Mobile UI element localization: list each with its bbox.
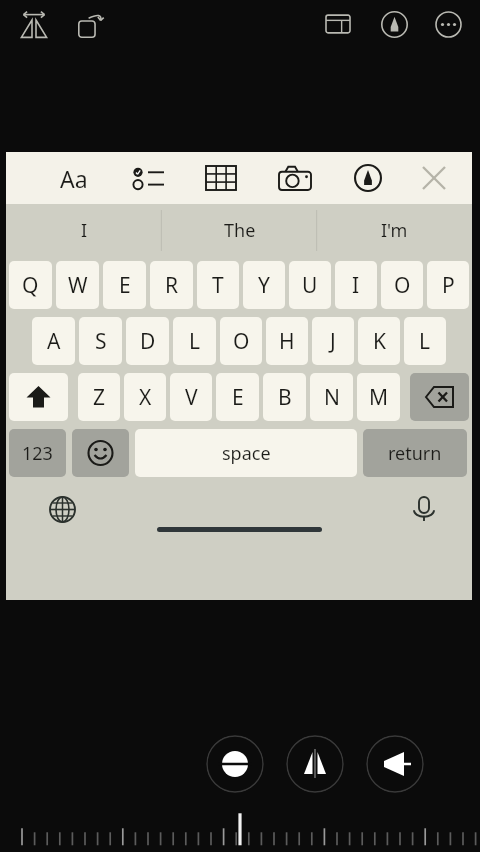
button[interactable]: Z: [78, 373, 120, 421]
staticText: X: [139, 383, 152, 412]
button[interactable]: Layout: [318, 4, 358, 44]
staticText: B: [278, 383, 292, 412]
staticText: P: [442, 271, 455, 300]
staticText: U: [302, 271, 318, 300]
button[interactable]: A: [32, 317, 75, 365]
staticText: L: [189, 327, 201, 356]
button[interactable]: M: [357, 373, 400, 421]
staticText: L: [419, 327, 431, 356]
button[interactable]: Rotate: [68, 4, 112, 48]
button[interactable]: W: [56, 261, 99, 309]
staticText: S: [95, 327, 107, 356]
button[interactable]: N: [310, 373, 353, 421]
button[interactable]: The: [162, 204, 317, 257]
button[interactable]: Table: [199, 160, 243, 196]
staticText: I: [352, 271, 360, 300]
button[interactable]: Q: [9, 261, 52, 309]
button[interactable]: V: [170, 373, 212, 421]
staticText: J: [330, 327, 336, 356]
button[interactable]: I: [6, 204, 162, 257]
staticText: A: [47, 327, 61, 356]
staticText: Y: [258, 271, 270, 300]
staticText: Z: [93, 383, 106, 412]
staticText: space: [222, 441, 271, 466]
button[interactable]: Camera: [271, 160, 319, 196]
staticText: 123: [22, 441, 53, 466]
button[interactable]: T: [197, 261, 239, 309]
button[interactable]: D: [126, 317, 169, 365]
button[interactable]: P: [427, 261, 469, 309]
staticText: D: [140, 327, 156, 356]
staticText: W: [68, 271, 88, 300]
button[interactable]: Close: [412, 160, 456, 196]
button[interactable]: E: [216, 373, 259, 421]
staticText: N: [324, 383, 340, 412]
button[interactable]: Shift: [9, 373, 68, 421]
staticText: I: [81, 218, 88, 243]
button[interactable]: K: [358, 317, 400, 365]
button[interactable]: O: [220, 317, 262, 365]
button[interactable]: return: [363, 429, 467, 477]
button[interactable]: Markup: [346, 160, 390, 196]
staticText: Q: [22, 271, 39, 300]
button[interactable]: Flip horizontal: [12, 4, 56, 48]
button[interactable]: U: [289, 261, 331, 309]
button[interactable]: Flip vertical: [206, 735, 264, 793]
staticText: E: [232, 383, 244, 412]
button[interactable]: More options: [428, 4, 468, 44]
button[interactable]: Checklist: [124, 160, 172, 196]
staticText: O: [394, 271, 411, 300]
button[interactable]: E: [103, 261, 146, 309]
button[interactable]: 123: [9, 429, 66, 477]
button[interactable]: I'm: [317, 204, 472, 257]
button[interactable]: J: [312, 317, 354, 365]
button[interactable]: L: [173, 317, 216, 365]
button[interactable]: I: [335, 261, 377, 309]
button[interactable]: O: [381, 261, 423, 309]
button[interactable]: X: [124, 373, 166, 421]
button[interactable]: Dictation: [404, 489, 444, 529]
staticText: E: [119, 271, 131, 300]
button[interactable]: Emoji: [72, 429, 129, 477]
staticText: I'm: [381, 218, 408, 243]
button[interactable]: Backspace: [410, 373, 469, 421]
staticText: V: [185, 383, 198, 412]
button[interactable]: Markup: [374, 4, 414, 44]
staticText: M: [369, 383, 389, 412]
button[interactable]: Flip horizontal: [286, 735, 344, 793]
staticText: return: [388, 441, 442, 466]
button[interactable]: L: [404, 317, 446, 365]
staticText: T: [212, 271, 224, 300]
button[interactable]: space: [135, 429, 357, 477]
staticText: The: [224, 218, 256, 243]
button[interactable]: Y: [243, 261, 285, 309]
button[interactable]: S: [79, 317, 122, 365]
staticText: O: [233, 327, 250, 356]
button[interactable]: H: [266, 317, 308, 365]
staticText: Aa: [60, 163, 88, 194]
staticText: K: [373, 327, 386, 356]
button[interactable]: Skew: [366, 735, 424, 793]
button[interactable]: B: [263, 373, 306, 421]
button[interactable]: Switch keyboard: [42, 489, 82, 529]
button[interactable]: R: [150, 261, 193, 309]
staticText: H: [279, 327, 295, 356]
button[interactable]: Aa: [52, 160, 96, 196]
staticText: R: [165, 271, 179, 300]
